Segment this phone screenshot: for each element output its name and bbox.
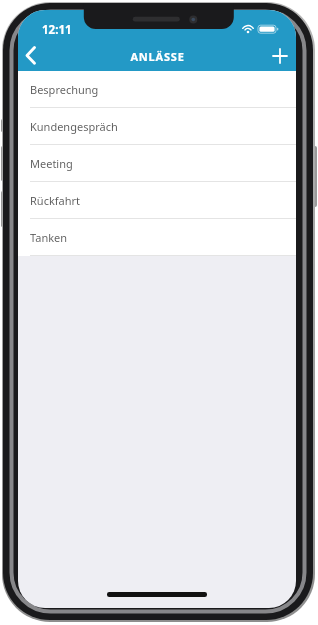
button[interactable]: Tanken — [18, 219, 296, 256]
staticText: Meeting — [30, 156, 73, 171]
button[interactable] — [265, 41, 295, 71]
staticText: Besprechung — [30, 82, 99, 97]
staticText: ANLÄSSE — [130, 49, 185, 64]
button[interactable]: Meeting — [18, 145, 296, 182]
button[interactable]: Besprechung — [18, 71, 296, 108]
button[interactable]: Kundengespräch — [18, 108, 296, 145]
staticText: Rückfahrt — [30, 193, 81, 208]
staticText: 12:11 — [42, 22, 72, 38]
staticText: Tanken — [30, 230, 68, 245]
button[interactable] — [18, 41, 48, 71]
staticText: Kundengespräch — [30, 119, 118, 134]
button[interactable]: Rückfahrt — [18, 182, 296, 219]
